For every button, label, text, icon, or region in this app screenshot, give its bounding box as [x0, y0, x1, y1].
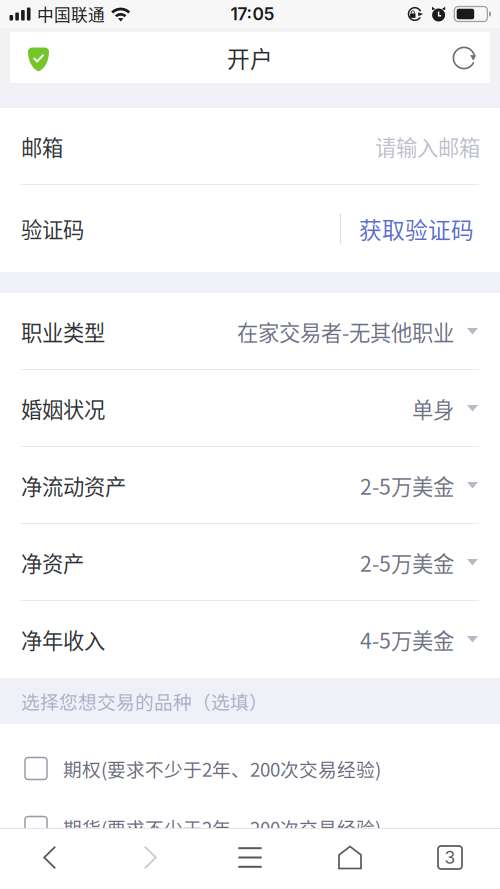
button[interactable]: Home [300, 829, 400, 886]
staticText: 邮箱 [21, 131, 63, 162]
staticText: 中国联通 [37, 2, 105, 26]
staticText: 开户 [227, 41, 273, 74]
button[interactable]: 获取验证码 [341, 185, 474, 272]
button[interactable]: Forward [100, 829, 200, 886]
button[interactable]: 净流动资产 [0, 447, 500, 524]
button[interactable]: 期权(要求不少于2年、200次交易经验) [0, 739, 500, 798]
staticText: 4-5万美金 [360, 624, 454, 655]
button[interactable]: Reload page [438, 32, 490, 83]
staticText: 验证码 [21, 213, 84, 244]
staticText: 职业类型 [21, 316, 105, 347]
staticText: 2-5万美金 [360, 470, 454, 501]
button[interactable]: Secure connection [10, 32, 67, 83]
staticText: 净资产 [21, 547, 84, 578]
staticText: 婚姻状况 [21, 393, 105, 424]
button[interactable]: 净年收入 [0, 601, 500, 678]
button[interactable]: Tabs, 3 open [400, 829, 500, 886]
button[interactable]: 期货(要求不少于2年、200次交易经验) [0, 798, 500, 857]
staticText: 在家交易者-无其他职业 [237, 316, 454, 347]
button[interactable]: 婚姻状况 [0, 370, 500, 447]
button[interactable]: Menu [200, 829, 300, 886]
button[interactable]: 净资产 [0, 524, 500, 601]
staticText: 获取验证码 [359, 212, 474, 245]
staticText: 期权(要求不少于2年、200次交易经验) [63, 755, 381, 782]
button[interactable]: Back [0, 829, 100, 886]
staticText: 17:05 [230, 3, 274, 24]
staticText: 净年收入 [21, 624, 105, 655]
staticText: 选择您想交易的品种（选填） [21, 687, 268, 714]
staticText: 请输入邮箱 [375, 131, 480, 162]
staticText: 3 [444, 847, 455, 868]
staticText: 净流动资产 [21, 470, 126, 501]
button[interactable]: 职业类型 [0, 293, 500, 370]
staticText: 单身 [412, 393, 454, 424]
staticText: 2-5万美金 [360, 547, 454, 578]
staticText: 期货(要求不少于2年、200次交易经验) [63, 814, 381, 841]
